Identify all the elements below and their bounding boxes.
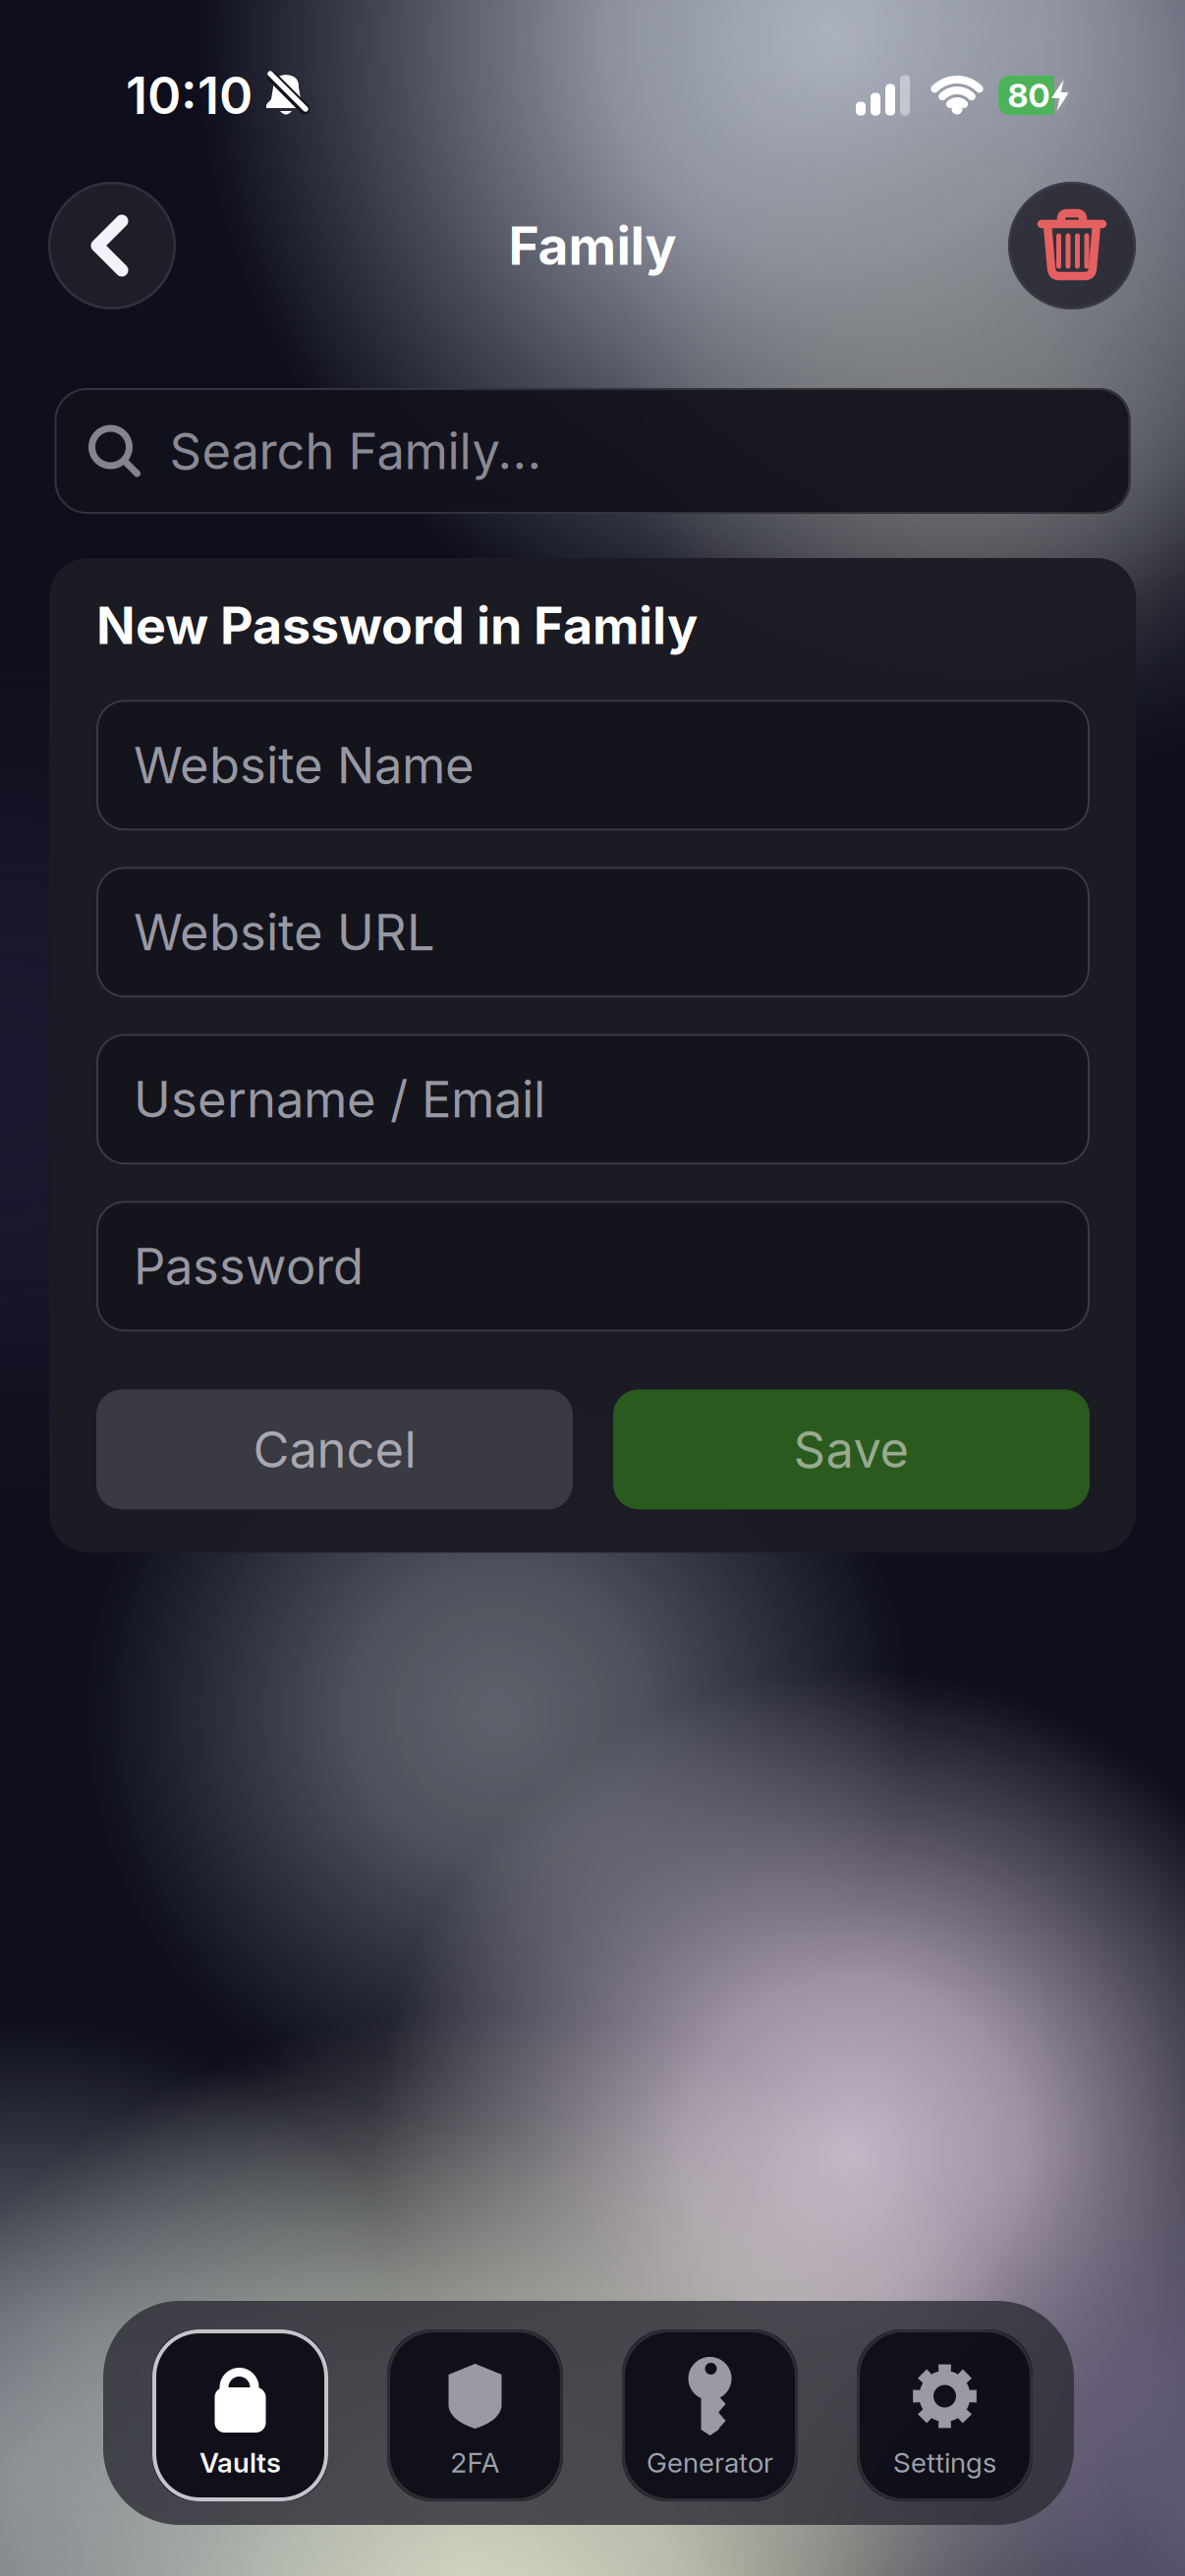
staticText: Vaults <box>199 2446 281 2479</box>
button[interactable]: Website Name <box>96 700 1090 830</box>
staticText: Family <box>508 215 677 276</box>
staticText: New Password in Family <box>96 595 698 656</box>
button[interactable]: Cancel <box>96 1389 573 1509</box>
staticText: 2FA <box>451 2446 500 2479</box>
staticText: Settings <box>893 2446 996 2479</box>
staticText: 80 <box>1008 76 1050 115</box>
button[interactable]: Generator <box>622 2329 798 2501</box>
staticText: Generator <box>647 2446 773 2479</box>
button[interactable]: Vaults <box>152 2329 328 2501</box>
button[interactable]: Website URL <box>96 867 1090 997</box>
button[interactable]: Settings <box>857 2329 1033 2501</box>
staticText: 10:10 <box>126 65 253 125</box>
button[interactable]: Password <box>96 1201 1090 1332</box>
button[interactable]: Username / Email <box>96 1034 1090 1165</box>
staticText: Website Name <box>134 736 475 795</box>
button[interactable]: Back <box>48 182 176 309</box>
staticText: Save <box>793 1420 909 1479</box>
staticText: Username / Email <box>134 1070 545 1129</box>
button[interactable]: 2FA <box>387 2329 563 2501</box>
button[interactable]: Save <box>613 1389 1090 1509</box>
staticText: Search Family... <box>169 422 542 480</box>
staticText: Cancel <box>253 1420 416 1479</box>
button[interactable]: Delete <box>1008 182 1136 309</box>
staticText: Website URL <box>134 903 435 962</box>
staticText: Password <box>134 1237 364 1296</box>
button[interactable]: Search Family <box>55 309 1130 514</box>
